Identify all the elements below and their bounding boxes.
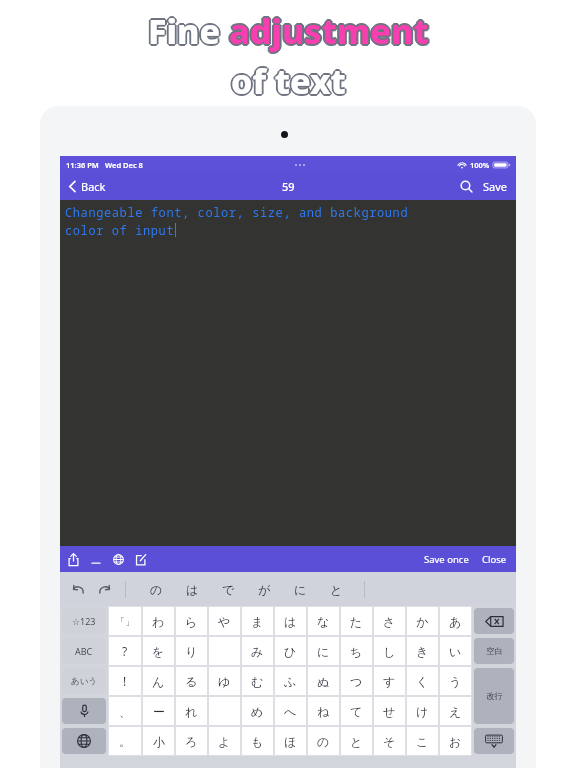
button[interactable]: Close xyxy=(480,550,509,569)
button[interactable]: や xyxy=(208,606,241,636)
staticText: も xyxy=(251,734,264,749)
button[interactable]: し xyxy=(373,636,406,666)
button[interactable]: ! xyxy=(108,666,142,696)
button[interactable]: Redo xyxy=(96,582,113,597)
button[interactable] xyxy=(208,636,241,666)
button[interactable]: つ xyxy=(340,666,373,696)
button[interactable]: も xyxy=(241,726,274,756)
button[interactable]: と xyxy=(340,726,373,756)
button[interactable]: は xyxy=(274,606,307,636)
button[interactable]: Change keyboard xyxy=(62,728,106,754)
button[interactable]: む xyxy=(241,666,274,696)
button[interactable]: か xyxy=(406,606,439,636)
button[interactable]: Share xyxy=(66,551,81,568)
button[interactable]: Hide keyboard xyxy=(474,728,514,754)
button[interactable]: せ xyxy=(373,696,406,726)
button[interactable]: Save xyxy=(481,176,510,197)
staticText: adjustment xyxy=(229,8,429,54)
button[interactable]: み xyxy=(241,636,274,666)
button[interactable]: ゆ xyxy=(208,666,241,696)
button[interactable]: ? xyxy=(108,636,142,666)
button[interactable]: ろ xyxy=(175,726,208,756)
staticText: of text xyxy=(230,57,345,99)
button[interactable]: ぬ xyxy=(307,666,340,696)
button[interactable]: こ xyxy=(406,726,439,756)
button[interactable]: 小 xyxy=(142,726,175,756)
button[interactable]: Translate xyxy=(111,552,126,567)
button[interactable]: め xyxy=(241,696,274,726)
button[interactable]: Back xyxy=(65,176,109,197)
button[interactable]: Save once xyxy=(422,550,471,569)
staticText: Fine xyxy=(148,8,229,54)
button[interactable]: の xyxy=(307,726,340,756)
button[interactable]: の xyxy=(138,572,174,606)
button[interactable]: 、 xyxy=(108,696,142,726)
button[interactable]: ね xyxy=(307,696,340,726)
button[interactable]: Search xyxy=(457,177,476,196)
button[interactable]: え xyxy=(439,696,472,726)
staticText: 「」 xyxy=(115,615,135,628)
button[interactable]: Undo xyxy=(70,582,87,597)
button[interactable]: は xyxy=(174,572,210,606)
button[interactable]: が xyxy=(246,572,282,606)
button[interactable]: を xyxy=(142,636,175,666)
button[interactable]: く xyxy=(406,666,439,696)
button[interactable]: う xyxy=(439,666,472,696)
button[interactable]: そ xyxy=(373,726,406,756)
button[interactable]: ん xyxy=(142,666,175,696)
button[interactable]: 「」 xyxy=(108,606,142,636)
staticText: Fine xyxy=(148,10,229,56)
button[interactable]: ほ xyxy=(274,726,307,756)
button[interactable]: て xyxy=(340,696,373,726)
button[interactable]: す xyxy=(373,666,406,696)
button[interactable]: き xyxy=(406,636,439,666)
button[interactable]: で xyxy=(210,572,246,606)
staticText: Fine xyxy=(148,9,229,55)
button[interactable]: ま xyxy=(241,606,274,636)
button[interactable]: Compose xyxy=(133,552,148,568)
button[interactable]: に xyxy=(282,572,318,606)
button[interactable]: ー xyxy=(142,696,175,726)
button[interactable]: よ xyxy=(208,726,241,756)
staticText: Save once xyxy=(424,553,469,566)
button[interactable]: に xyxy=(307,636,340,666)
button[interactable]: ☆123 xyxy=(62,608,106,634)
button[interactable]: ち xyxy=(340,636,373,666)
button[interactable]: な xyxy=(307,606,340,636)
button[interactable]: あいう xyxy=(62,668,106,694)
staticText: adjustment xyxy=(228,7,428,53)
button[interactable]: た xyxy=(340,606,373,636)
button[interactable]: 空白 xyxy=(474,638,514,664)
button[interactable]: へ xyxy=(274,696,307,726)
button[interactable]: ひ xyxy=(274,636,307,666)
button[interactable]: と xyxy=(318,572,354,606)
button[interactable]: さ xyxy=(373,606,406,636)
staticText: は xyxy=(284,614,297,629)
button[interactable]: Backspace xyxy=(474,608,514,634)
staticText: Fine xyxy=(147,7,228,53)
staticText: ち xyxy=(350,644,363,659)
button[interactable]: る xyxy=(175,666,208,696)
button[interactable] xyxy=(208,696,241,726)
button[interactable]: Dictate xyxy=(62,698,106,724)
button[interactable]: あ xyxy=(439,606,472,636)
button[interactable]: お xyxy=(439,726,472,756)
button[interactable]: ふ xyxy=(274,666,307,696)
staticText: わ xyxy=(152,614,165,629)
button[interactable]: け xyxy=(406,696,439,726)
button[interactable]: い xyxy=(439,636,472,666)
staticText: た xyxy=(350,614,363,629)
staticText: of text xyxy=(231,58,346,100)
button[interactable]: ABC xyxy=(62,638,106,664)
staticText: adjustment xyxy=(230,7,430,53)
button[interactable]: わ xyxy=(142,606,175,636)
staticText: こ xyxy=(416,734,429,749)
button[interactable]: り xyxy=(175,636,208,666)
button[interactable]: 改行 xyxy=(474,668,514,724)
button[interactable]: れ xyxy=(175,696,208,726)
button[interactable]: Minimize xyxy=(89,551,103,568)
staticText: 。 xyxy=(119,734,131,749)
button[interactable]: 。 xyxy=(108,726,142,756)
button[interactable]: ら xyxy=(175,606,208,636)
staticText: Changeable font, color, size, and backgr… xyxy=(65,204,409,220)
